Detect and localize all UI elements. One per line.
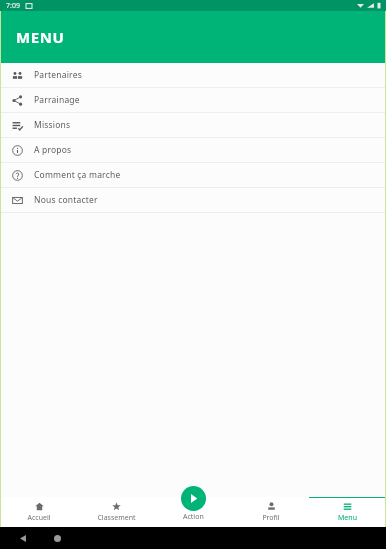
button[interactable]: Missions	[0, 113, 386, 137]
button[interactable]: Comment ça marche	[0, 163, 386, 187]
button[interactable]: Menu	[309, 497, 386, 527]
staticText: Comment ça marche	[34, 169, 121, 181]
button[interactable]: Accueil	[0, 497, 78, 527]
staticText: Nous contacter	[34, 194, 98, 206]
other: Home	[54, 535, 61, 542]
button[interactable]: Parrainage	[0, 88, 386, 112]
staticText: A propos	[34, 144, 72, 156]
staticText: Missions	[34, 119, 71, 131]
staticText: Accueil	[27, 513, 51, 523]
staticText: Profil	[262, 513, 280, 523]
staticText: Action	[183, 512, 204, 522]
staticText: MENU	[16, 27, 65, 47]
staticText: 7:09	[6, 1, 20, 11]
button[interactable]: Action	[155, 497, 232, 527]
button[interactable]: Nous contacter	[0, 188, 386, 212]
staticText: Classement	[97, 513, 136, 523]
staticText: Partenaires	[34, 69, 82, 81]
staticText: Menu	[338, 513, 357, 523]
button[interactable]: Partenaires	[0, 63, 386, 87]
staticText: Parrainage	[34, 94, 80, 106]
button[interactable]: Action	[181, 486, 206, 511]
button[interactable]: Profil	[232, 497, 309, 527]
other: Back	[20, 535, 27, 542]
button[interactable]: A propos	[0, 138, 386, 162]
button[interactable]: Classement	[78, 497, 155, 527]
